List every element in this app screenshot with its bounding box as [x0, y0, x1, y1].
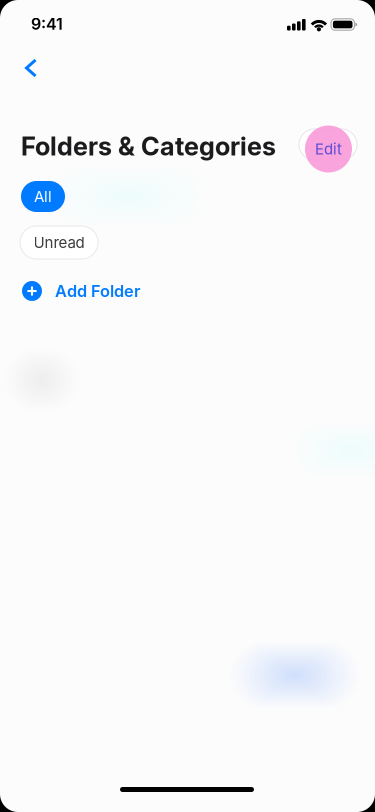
staticText: Add Folder — [55, 281, 140, 301]
button[interactable]: Edit — [299, 123, 359, 175]
button[interactable]: Add Folder — [22, 276, 140, 306]
staticText: 9:41 — [31, 14, 63, 34]
staticText: Edit — [315, 140, 342, 158]
button[interactable]: All — [21, 181, 65, 212]
button[interactable]: Unread — [20, 226, 98, 259]
staticText: All — [34, 187, 52, 206]
staticText: Unread — [33, 233, 84, 252]
button[interactable]: Back — [9, 46, 53, 90]
staticText: Folders & Categories — [21, 131, 276, 162]
